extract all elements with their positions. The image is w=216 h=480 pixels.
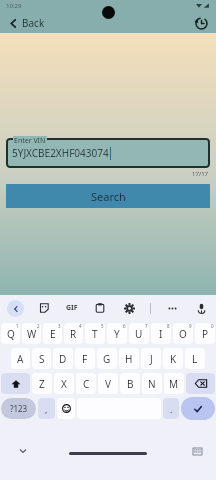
button[interactable]: V: [98, 373, 118, 394]
button[interactable]: G: [97, 348, 117, 369]
staticText: 1: [16, 323, 19, 329]
button[interactable]: B: [120, 373, 140, 394]
staticText: M: [169, 377, 179, 391]
button[interactable]: GIF: [64, 301, 80, 315]
staticText: Q: [7, 327, 15, 341]
button[interactable]: Change keyboard: [190, 444, 204, 458]
staticText: Enter VIN: [14, 136, 46, 146]
button[interactable]: Emoji: [57, 398, 75, 419]
staticText: E: [50, 327, 56, 341]
button[interactable]: Stickers: [36, 300, 52, 316]
button[interactable]: P: [195, 323, 215, 344]
staticText: 5: [101, 323, 104, 329]
staticText: U: [135, 327, 143, 341]
button[interactable]: More options: [164, 300, 180, 316]
staticText: 0: [211, 323, 214, 329]
button[interactable]: A: [11, 348, 30, 369]
button[interactable]: Backspace: [186, 373, 215, 394]
button[interactable]: .: [163, 398, 179, 419]
staticText: Back: [22, 16, 45, 30]
button[interactable]: X: [54, 373, 74, 394]
staticText: D: [59, 352, 67, 366]
staticText: 5YJXCBE2XHF043074: [12, 146, 109, 160]
button[interactable]: Z: [32, 373, 52, 394]
staticText: T: [92, 327, 98, 341]
button[interactable]: History: [191, 13, 211, 33]
button[interactable]: M: [164, 373, 184, 394]
button[interactable]: L: [185, 348, 205, 369]
staticText: R: [70, 327, 77, 341]
staticText: J: [150, 352, 153, 366]
staticText: X: [61, 377, 67, 391]
button[interactable]: Q: [1, 323, 20, 344]
staticText: C: [83, 377, 90, 391]
button[interactable]: Search: [6, 184, 210, 208]
staticText: Search: [91, 189, 126, 204]
button[interactable]: 5YJXCBE2XHF043074: [6, 138, 210, 168]
staticText: .: [170, 403, 173, 415]
button[interactable]: Voice input: [193, 300, 209, 316]
staticText: O: [179, 327, 187, 341]
staticText: L: [192, 352, 198, 366]
staticText: ,: [45, 403, 48, 415]
staticText: 3: [58, 323, 61, 329]
button[interactable]: ?123: [1, 398, 36, 419]
button[interactable]: K: [163, 348, 183, 369]
button[interactable]: U: [129, 323, 149, 344]
button[interactable]: J: [141, 348, 161, 369]
staticText: 7: [145, 323, 148, 329]
staticText: S: [39, 352, 45, 366]
button[interactable]: ,: [38, 398, 55, 419]
staticText: I: [159, 327, 163, 341]
staticText: 10:29: [6, 2, 22, 10]
staticText: H: [125, 352, 133, 366]
button[interactable]: O: [173, 323, 193, 344]
button[interactable]: Clipboard: [92, 300, 108, 316]
button[interactable]: Back: [5, 14, 48, 32]
button[interactable]: N: [142, 373, 162, 394]
button[interactable]: H: [119, 348, 139, 369]
staticText: F: [82, 352, 88, 366]
button[interactable]: T: [85, 323, 105, 344]
button[interactable]: E: [43, 323, 62, 344]
staticText: GIF: [66, 303, 78, 313]
button[interactable]: Hide keyboard: [16, 444, 30, 458]
button[interactable]: Enter: [181, 397, 215, 420]
staticText: B: [127, 377, 134, 391]
staticText: V: [105, 377, 111, 391]
button[interactable]: D: [53, 348, 73, 369]
staticText: 2: [37, 323, 40, 329]
staticText: 4: [79, 323, 82, 329]
button[interactable]: Settings: [121, 300, 137, 316]
button[interactable]: Shift: [1, 373, 30, 394]
staticText: Y: [114, 327, 120, 341]
staticText: K: [170, 352, 177, 366]
staticText: 8: [167, 323, 170, 329]
button[interactable]: Y: [107, 323, 127, 344]
staticText: W: [27, 327, 37, 341]
staticText: N: [148, 377, 156, 391]
button[interactable]: R: [64, 323, 83, 344]
staticText: 9: [189, 323, 192, 329]
staticText: 6: [123, 323, 126, 329]
staticText: Z: [39, 377, 45, 391]
button[interactable]: F: [75, 348, 95, 369]
staticText: A: [17, 352, 24, 366]
button[interactable]: W: [22, 323, 41, 344]
button[interactable]: I: [151, 323, 171, 344]
button[interactable]: C: [76, 373, 96, 394]
staticText: ?123: [10, 403, 28, 414]
button[interactable]: Collapse toolbar: [7, 300, 24, 317]
button[interactable]: S: [32, 348, 51, 369]
staticText: 17/17: [6, 170, 208, 178]
staticText: G: [103, 352, 111, 366]
staticText: P: [202, 327, 209, 341]
